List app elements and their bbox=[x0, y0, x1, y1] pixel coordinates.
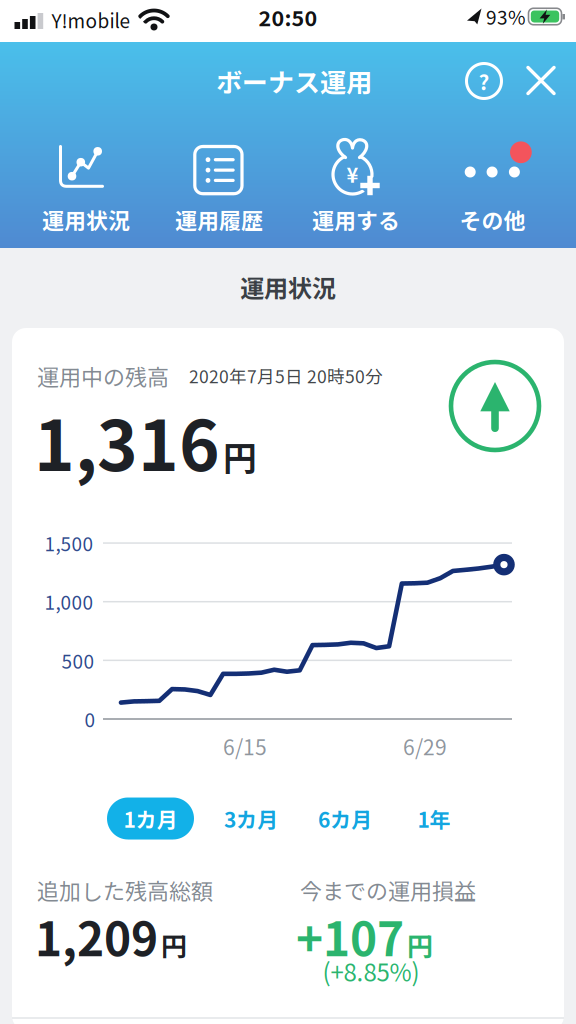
button[interactable]: 1カ月 bbox=[107, 797, 194, 839]
staticText: 運用状況 bbox=[240, 270, 336, 304]
staticText: 2020年7月5日 20時50分 bbox=[189, 363, 383, 388]
staticText: 運用する bbox=[312, 204, 400, 235]
staticText: 93% bbox=[486, 3, 525, 30]
staticText: 運用状況 bbox=[42, 204, 130, 235]
staticText: 500 bbox=[61, 647, 94, 674]
staticText: 運用履歴 bbox=[175, 204, 263, 235]
staticText: 1,000 bbox=[44, 588, 93, 615]
button[interactable]: その他 bbox=[422, 120, 562, 224]
staticText: 1,209 bbox=[35, 903, 158, 970]
button[interactable]: 3カ月 bbox=[216, 797, 286, 839]
button[interactable]: 6カ月 bbox=[310, 797, 380, 839]
staticText: 円 bbox=[223, 432, 257, 481]
staticText: 円 bbox=[407, 926, 433, 964]
staticText: 1,500 bbox=[44, 529, 93, 557]
staticText: 今までの運用損益 bbox=[300, 874, 476, 906]
button[interactable]: 運用履歴 bbox=[149, 120, 289, 224]
staticText: Y!mobile bbox=[51, 6, 130, 34]
button[interactable]: ? bbox=[462, 59, 506, 103]
staticText: 運用中の残高 bbox=[37, 360, 169, 392]
button[interactable]: 1年 bbox=[406, 797, 462, 839]
staticText: 3カ月 bbox=[224, 803, 278, 834]
staticText: +107 bbox=[296, 903, 404, 970]
button[interactable]: ¥ bbox=[286, 120, 426, 224]
staticText: 0 bbox=[84, 705, 95, 733]
staticText: ¥ bbox=[346, 159, 358, 188]
staticText: 追加した残高総額 bbox=[37, 874, 213, 906]
staticText: (+8.85%) bbox=[322, 954, 419, 988]
staticText: 1年 bbox=[417, 803, 450, 834]
staticText: 6カ月 bbox=[318, 803, 372, 834]
button[interactable]: 運用状況 bbox=[16, 120, 156, 224]
staticText: ? bbox=[478, 66, 489, 96]
staticText: 6/29 bbox=[403, 731, 447, 761]
staticText: その他 bbox=[459, 204, 525, 235]
button[interactable] bbox=[519, 58, 563, 102]
staticText: 1,316 bbox=[34, 391, 220, 491]
staticText: 円 bbox=[161, 926, 187, 964]
staticText: ボーナス運用 bbox=[216, 62, 372, 100]
staticText: 20:50 bbox=[258, 1, 317, 32]
staticText: 1カ月 bbox=[123, 803, 177, 834]
staticText: 6/15 bbox=[223, 731, 267, 761]
